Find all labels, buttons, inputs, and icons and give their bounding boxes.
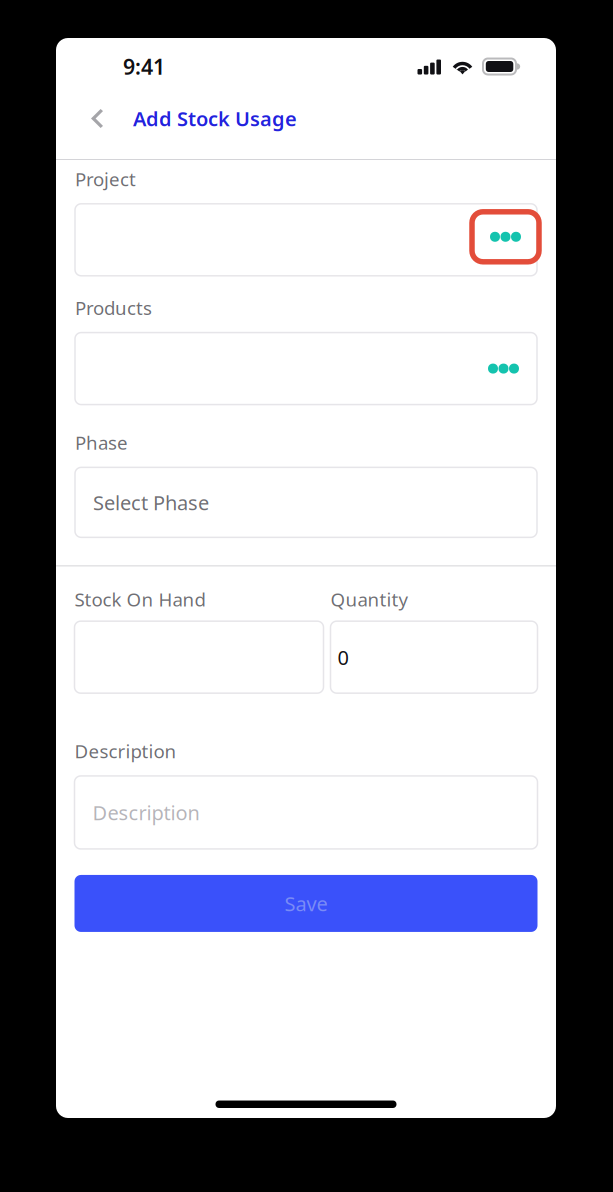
staticText: Description xyxy=(74,739,176,763)
button[interactable]: Add Stock Usage xyxy=(133,92,297,144)
button[interactable] xyxy=(75,204,537,276)
staticText: Add Stock Usage xyxy=(133,105,297,132)
button[interactable]: Select Phase xyxy=(75,467,537,537)
staticText: 0 xyxy=(337,644,348,670)
staticText: 9:41 xyxy=(123,52,165,81)
staticText: Project xyxy=(75,166,136,191)
button[interactable]: Save xyxy=(74,875,537,932)
staticText: Description xyxy=(92,799,199,826)
staticText: Quantity xyxy=(330,587,408,612)
staticText: Stock On Hand xyxy=(74,587,205,612)
staticText: Select Phase xyxy=(93,489,209,516)
staticText: Save xyxy=(284,890,327,917)
staticText: Products xyxy=(75,295,152,320)
staticText: Phase xyxy=(75,430,128,455)
button[interactable] xyxy=(75,333,537,405)
button[interactable]: Back xyxy=(91,92,133,144)
